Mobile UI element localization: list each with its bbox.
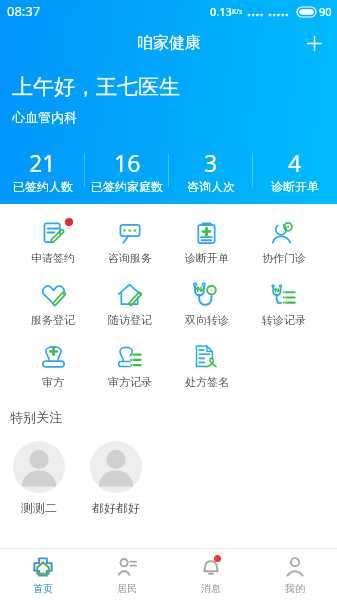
staticText: 咨询服务 xyxy=(108,251,152,265)
staticText: K/s xyxy=(232,7,243,17)
staticText: 协作门诊 xyxy=(262,251,306,265)
staticText: 居民 xyxy=(117,582,137,595)
button[interactable]: 诊断开单 xyxy=(168,213,245,275)
staticText: 测测二 xyxy=(21,500,57,515)
button[interactable]: 咨询服务 xyxy=(91,213,168,275)
staticText: 08:37 xyxy=(7,2,41,20)
staticText: 心血管内科 xyxy=(12,109,77,125)
staticText: 我的 xyxy=(285,582,305,595)
staticText: 4 xyxy=(288,147,302,178)
staticText: 首页 xyxy=(33,582,53,595)
staticText: 21 xyxy=(29,147,56,178)
staticText: 已签约家庭数 xyxy=(91,179,163,192)
staticText: 诊断开单 xyxy=(185,251,229,265)
button[interactable]: 申请签约 xyxy=(15,213,91,275)
button[interactable]: 我的 xyxy=(253,549,337,600)
button[interactable]: 服务登记 xyxy=(15,275,91,337)
button[interactable]: 转诊记录 xyxy=(245,275,322,337)
staticText: 服务登记 xyxy=(31,313,75,327)
button[interactable]: 随访登记 xyxy=(91,275,168,337)
staticText: 审方记录 xyxy=(108,375,152,389)
staticText: 已签约人数 xyxy=(13,179,73,192)
staticText: 3 xyxy=(204,147,218,178)
staticText: 处方签名 xyxy=(185,375,229,389)
staticText: 上午好，王七医生 xyxy=(12,74,180,100)
button[interactable]: 首页 xyxy=(0,549,85,600)
staticText: 咱家健康 xyxy=(137,33,201,53)
staticText: 转诊记录 xyxy=(262,313,306,327)
staticText: 消息 xyxy=(201,582,221,595)
button[interactable]: 审方 xyxy=(15,337,91,399)
staticText: 随访登记 xyxy=(108,313,152,327)
button[interactable]: 处方签名 xyxy=(168,337,245,399)
button[interactable]: 都好都好 xyxy=(77,441,154,515)
button[interactable]: 居民 xyxy=(85,549,169,600)
staticText: 双向转诊 xyxy=(185,313,229,327)
staticText: 90 xyxy=(319,4,332,19)
button[interactable]: 协作门诊 xyxy=(245,213,322,275)
staticText: 都好都好 xyxy=(92,500,140,515)
button[interactable]: 测测二 xyxy=(0,441,77,515)
button[interactable]: 双向转诊 xyxy=(168,275,245,337)
staticText: 咨询人次 xyxy=(187,179,235,192)
button[interactable]: Add xyxy=(301,30,327,56)
button[interactable]: 审方记录 xyxy=(91,337,168,399)
staticText: 审方 xyxy=(42,375,64,389)
staticText: 16 xyxy=(114,147,141,178)
staticText: 申请签约 xyxy=(31,251,75,265)
button[interactable]: 消息 xyxy=(169,549,253,600)
staticText: 特别关注 xyxy=(10,409,62,425)
staticText: 0.13 xyxy=(210,4,232,19)
staticText: 诊断开单 xyxy=(271,179,319,192)
